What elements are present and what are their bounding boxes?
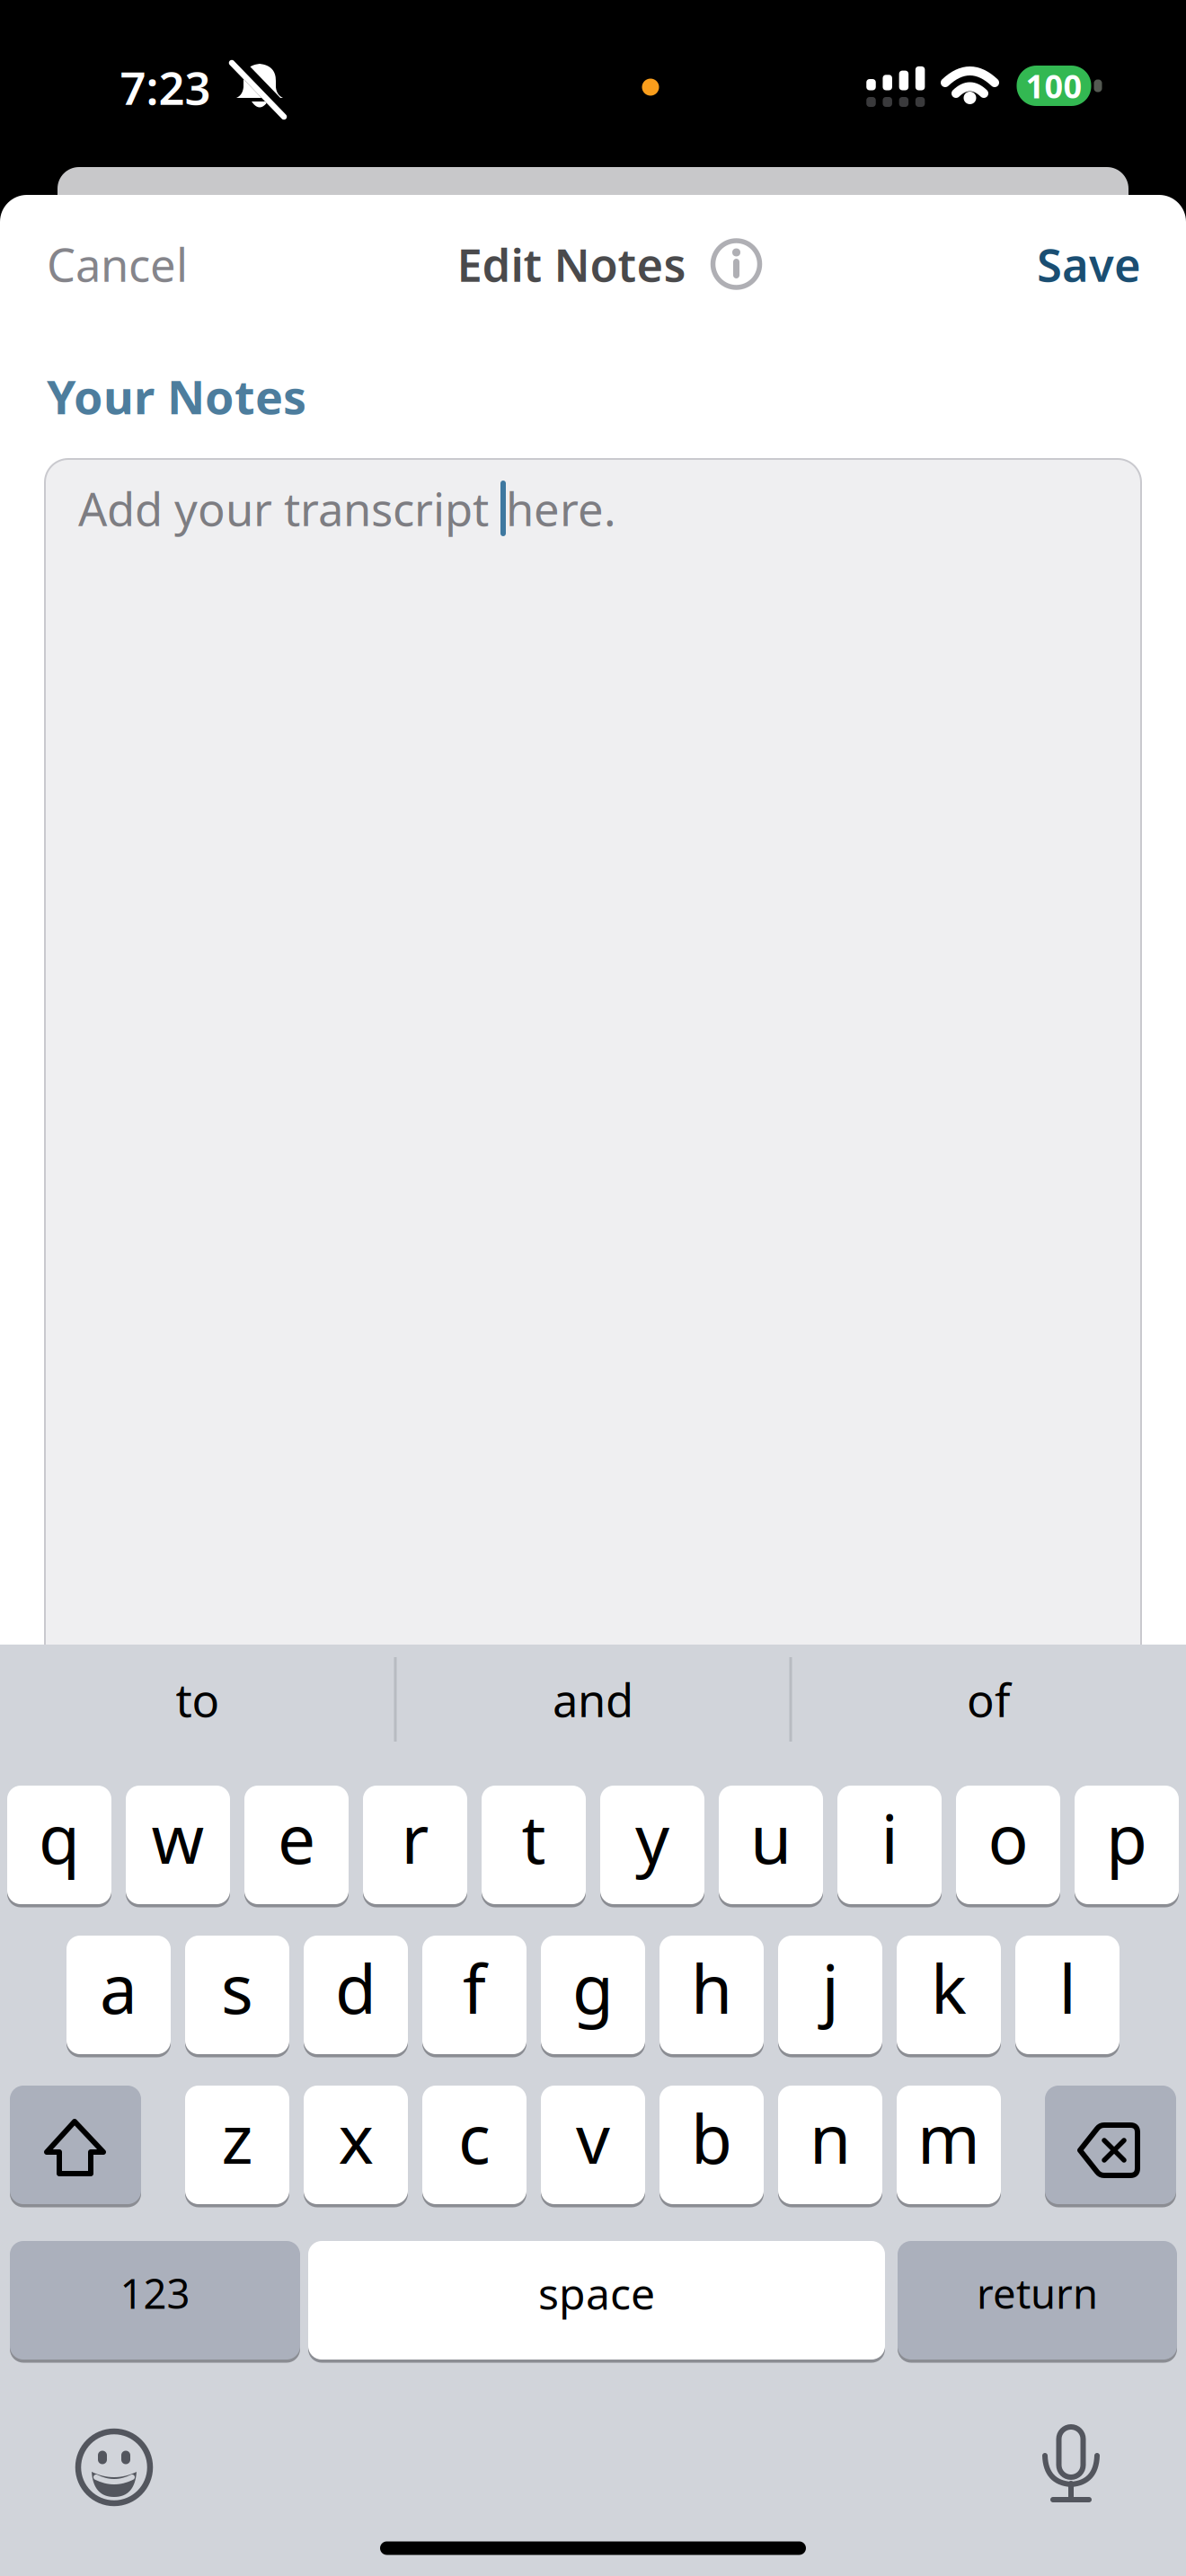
staticText: s — [221, 1943, 253, 2032]
staticText: u — [750, 1793, 792, 1882]
staticText: b — [691, 2093, 732, 2182]
button[interactable]: a — [66, 1934, 171, 2056]
staticText: x — [338, 2093, 373, 2182]
button[interactable] — [1045, 2084, 1176, 2206]
button[interactable]: d — [304, 1934, 408, 2056]
button[interactable]: n — [778, 2084, 882, 2206]
button[interactable] — [0, 0, 1186, 2576]
staticText: and — [553, 1669, 633, 1730]
button[interactable] — [0, 0, 1186, 2576]
button[interactable]: of — [967, 1669, 1010, 1730]
button[interactable]: k — [897, 1934, 1001, 2056]
button[interactable]: and — [553, 1669, 633, 1730]
button[interactable]: return — [898, 2239, 1177, 2361]
button[interactable]: v — [541, 2084, 645, 2206]
button[interactable]: y — [600, 1784, 704, 1906]
staticText: q — [39, 1793, 80, 1882]
staticText: i — [881, 1793, 898, 1882]
button[interactable]: e — [244, 1784, 349, 1906]
staticText: of — [967, 1669, 1010, 1730]
button[interactable]: q — [7, 1784, 111, 1906]
staticText: a — [100, 1943, 137, 2032]
button[interactable]: w — [126, 1784, 230, 1906]
button[interactable]: s — [185, 1934, 289, 2056]
staticText: here. — [506, 478, 616, 539]
button[interactable]: m — [897, 2084, 1001, 2206]
button[interactable]: i — [837, 1784, 942, 1906]
button[interactable]: Cancel — [47, 234, 188, 294]
button[interactable]: p — [1075, 1784, 1179, 1906]
staticText: t — [522, 1793, 546, 1882]
button[interactable]: j — [778, 1934, 882, 2056]
staticText: g — [572, 1943, 614, 2032]
staticText: 100 — [1026, 64, 1082, 107]
button[interactable] — [45, 459, 1141, 1672]
staticText: 7:23 — [120, 57, 211, 117]
staticText: j — [822, 1943, 839, 2032]
button[interactable]: t — [482, 1784, 586, 1906]
staticText: y — [635, 1793, 669, 1882]
staticText: p — [1106, 1793, 1147, 1882]
staticText: k — [931, 1943, 967, 2032]
button[interactable]: 123 — [10, 2239, 300, 2361]
staticText: Edit Notes — [457, 234, 686, 294]
staticText: return — [977, 2266, 1098, 2320]
button[interactable] — [711, 239, 761, 289]
staticText: v — [576, 2093, 610, 2182]
button[interactable]: o — [956, 1784, 1060, 1906]
staticText: Save — [1037, 234, 1141, 294]
staticText: l — [1059, 1943, 1076, 2032]
staticText: c — [458, 2093, 491, 2182]
button[interactable]: Save — [1037, 234, 1141, 294]
staticText: z — [221, 2093, 253, 2182]
button[interactable]: b — [659, 2084, 764, 2206]
staticText: e — [278, 1793, 315, 1882]
button[interactable]: c — [422, 2084, 527, 2206]
staticText: Add your transcript — [78, 478, 500, 539]
staticText: 123 — [120, 2266, 190, 2320]
staticText: f — [463, 1943, 486, 2032]
staticText: Cancel — [47, 234, 188, 294]
staticText: d — [335, 1943, 376, 2032]
button[interactable]: r — [363, 1784, 467, 1906]
staticText: m — [917, 2093, 980, 2182]
button[interactable]: u — [719, 1784, 823, 1906]
staticText: space — [538, 2264, 655, 2322]
staticText: Your Notes — [47, 365, 306, 427]
button[interactable]: space — [308, 2239, 885, 2361]
staticText: r — [401, 1793, 429, 1882]
button[interactable] — [10, 2084, 141, 2206]
button[interactable]: h — [659, 1934, 764, 2056]
button[interactable]: z — [185, 2084, 289, 2206]
button[interactable]: f — [422, 1934, 527, 2056]
staticText: to — [176, 1669, 220, 1730]
staticText: h — [691, 1943, 732, 2032]
button[interactable]: x — [304, 2084, 408, 2206]
staticText: w — [151, 1793, 204, 1882]
button[interactable]: g — [541, 1934, 645, 2056]
button[interactable]: l — [1015, 1934, 1120, 2056]
button[interactable]: to — [176, 1669, 220, 1730]
staticText: o — [988, 1793, 1028, 1882]
staticText: n — [810, 2093, 851, 2182]
